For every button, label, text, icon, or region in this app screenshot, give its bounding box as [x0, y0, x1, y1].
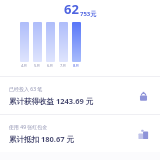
staticText: 累计抵扣 180.67 元 [9, 134, 74, 144]
staticText: 使用 49 张红包金 [9, 124, 48, 131]
staticText: 6月 [47, 63, 54, 68]
staticText: 8月 [73, 63, 80, 68]
button[interactable]: 使用 49 张红包金 [0, 115, 160, 152]
staticText: 累计获得收益 1243.69 元 [9, 96, 94, 106]
staticText: 4月 [21, 63, 28, 68]
staticText: 5月 [34, 63, 41, 68]
other: 收益详情 [135, 88, 151, 104]
staticText: 已经投入 63 笔 [9, 86, 43, 93]
staticText: 753元 [80, 10, 97, 18]
button[interactable]: 已经投入 63 笔 [0, 77, 160, 114]
other: 红包详情 [135, 126, 151, 142]
staticText: 7月 [60, 63, 67, 68]
staticText: 62 [64, 0, 79, 18]
